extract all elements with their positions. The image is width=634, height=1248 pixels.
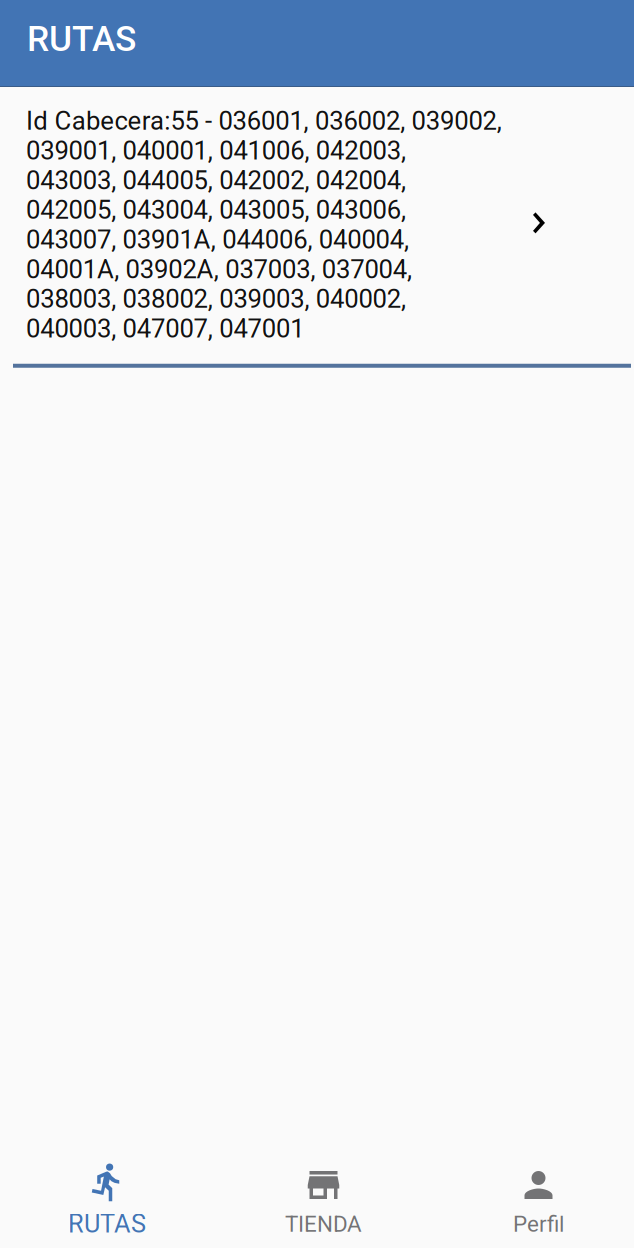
staticText: Perfil	[513, 1211, 564, 1237]
staticText: RUTAS	[68, 1209, 146, 1239]
staticText: Id Cabecera:55 - 036001, 036002, 039002,…	[26, 106, 502, 344]
staticText: RUTAS	[27, 18, 136, 60]
button[interactable]: Id Cabecera:55 - 036001, 036002, 039002,…	[0, 87, 634, 364]
staticText: TIENDA	[285, 1211, 362, 1237]
button[interactable]: TIENDA	[214, 1136, 433, 1248]
button[interactable]: RUTAS	[0, 1136, 214, 1248]
button[interactable]: Perfil	[433, 1136, 634, 1248]
